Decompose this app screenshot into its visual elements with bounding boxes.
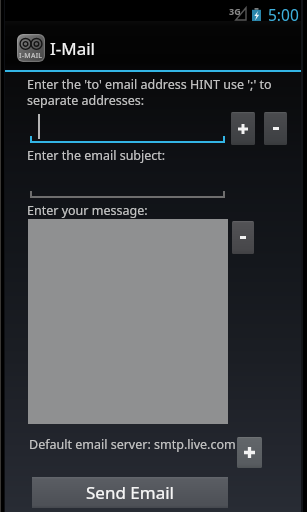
button[interactable]: I-MAIL [0,21,307,70]
staticText: 3G [229,5,241,17]
button[interactable]: Send Email [32,477,228,508]
staticText: Enter the 'to' email address HINT use ';… [27,76,281,108]
button[interactable]: Remove [264,112,287,145]
staticText: Send Email [86,481,174,504]
staticText: Enter your message: [27,202,148,219]
staticText: Enter the email subject: [27,147,166,164]
button[interactable]: Remove [232,221,254,254]
button[interactable]: Add [231,112,255,145]
staticText: I-MAIL [19,51,43,61]
staticText: I-Mail [50,37,95,60]
staticText: Default email server: smtp.live.com [29,436,236,453]
button[interactable]: Add [237,437,262,468]
staticText: 5:00 [268,4,299,25]
